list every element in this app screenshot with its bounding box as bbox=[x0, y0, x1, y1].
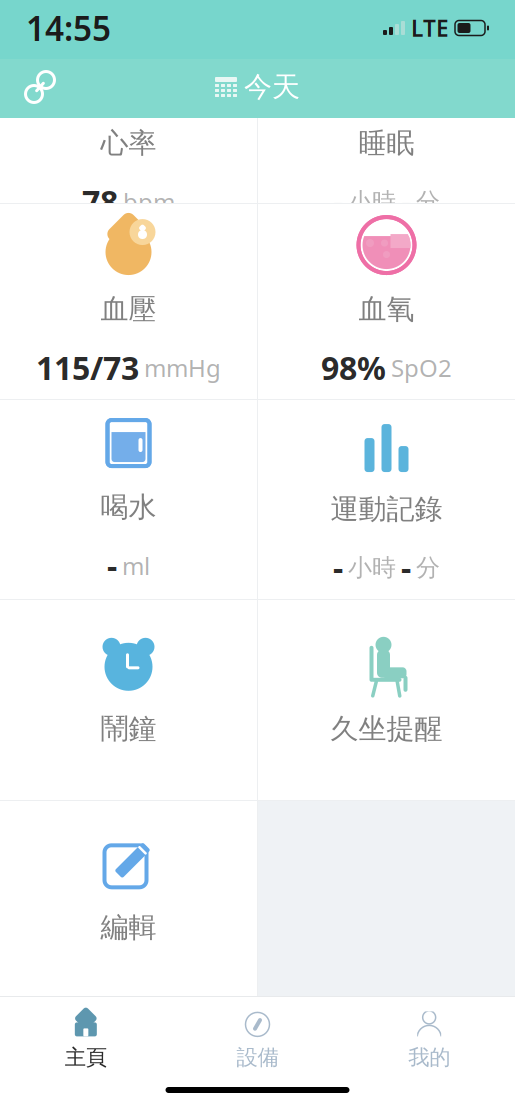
button[interactable]: 久坐提醒 bbox=[258, 600, 515, 800]
staticText: 心率 bbox=[100, 126, 156, 160]
staticText: 編輯 bbox=[100, 910, 156, 945]
button[interactable]: 我的 bbox=[343, 1003, 515, 1079]
staticText: 睡眠 bbox=[358, 126, 414, 160]
staticText: SpO2 bbox=[391, 352, 452, 384]
button[interactable]: 設備 bbox=[172, 1003, 343, 1079]
staticText: - bbox=[333, 546, 343, 589]
button[interactable]: 編輯 bbox=[0, 801, 257, 996]
staticText: mmHg bbox=[144, 352, 221, 384]
staticText: 血壓 bbox=[100, 292, 156, 326]
staticText: 115/73 bbox=[36, 346, 139, 389]
button[interactable]: 運動記錄 bbox=[258, 400, 515, 599]
button[interactable]: 喝水 bbox=[0, 400, 257, 599]
button[interactable]: 主頁 bbox=[0, 1003, 172, 1079]
button[interactable]: 血壓 bbox=[0, 204, 257, 399]
staticText: 98% bbox=[321, 346, 386, 389]
button[interactable]: 血氧 bbox=[258, 204, 515, 399]
staticText: 設備 bbox=[236, 1044, 278, 1071]
staticText: LTE bbox=[411, 13, 449, 43]
staticText: 久坐提醒 bbox=[330, 712, 442, 746]
button[interactable]: 睡眠 bbox=[258, 118, 515, 203]
staticText: 鬧鐘 bbox=[100, 712, 156, 746]
staticText: 我的 bbox=[408, 1044, 450, 1071]
staticText: ml bbox=[122, 550, 150, 582]
staticText: 14:55 bbox=[26, 6, 111, 50]
staticText: 小時 bbox=[348, 187, 396, 216]
staticText: 今天 bbox=[244, 70, 300, 104]
staticText: 小時 bbox=[348, 553, 396, 582]
staticText: 分 bbox=[416, 187, 440, 216]
staticText: - bbox=[401, 546, 411, 589]
staticText: 主頁 bbox=[65, 1044, 107, 1071]
button[interactable]: 鬧鐘 bbox=[0, 600, 257, 800]
staticText: 分 bbox=[416, 553, 440, 582]
staticText: 血氧 bbox=[358, 292, 414, 326]
staticText: 78 bbox=[82, 180, 118, 223]
staticText: 喝水 bbox=[100, 490, 156, 524]
button[interactable]: 心率 bbox=[0, 118, 257, 203]
button[interactable]: Connect device bbox=[14, 63, 66, 111]
staticText: bpm bbox=[123, 186, 175, 218]
staticText: - bbox=[401, 180, 411, 223]
staticText: 運動記錄 bbox=[330, 492, 442, 526]
staticText: - bbox=[107, 544, 117, 587]
